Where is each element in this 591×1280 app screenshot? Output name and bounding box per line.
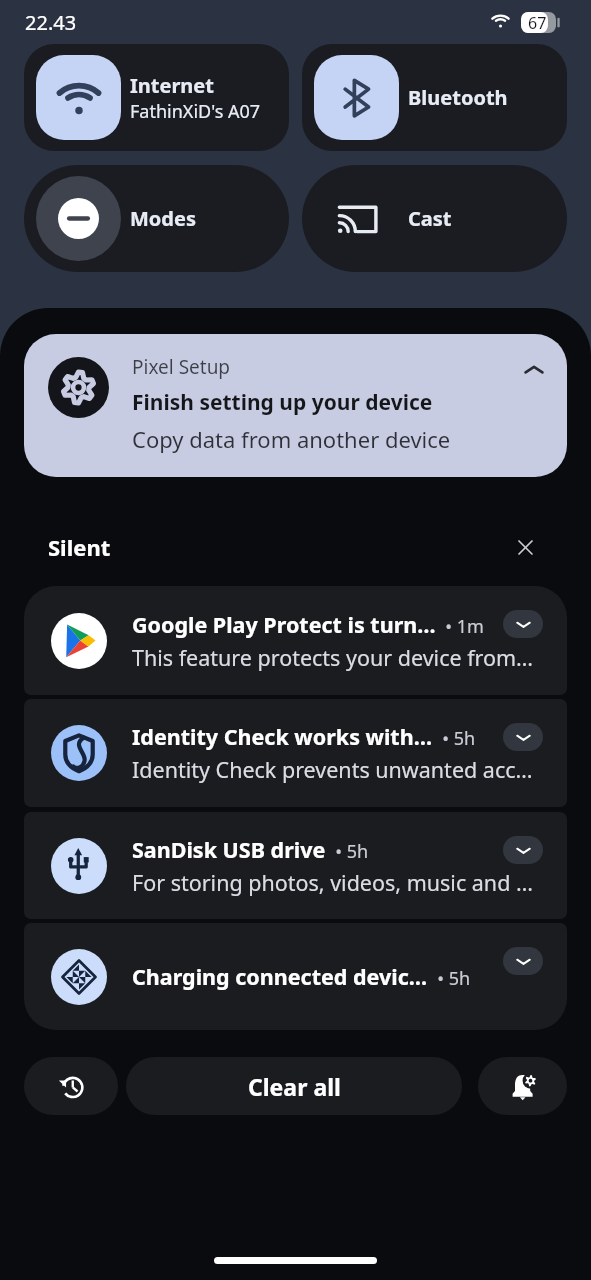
staticText: For storing photos, videos, music and … — [132, 868, 533, 897]
staticText: Pixel Setup — [132, 354, 231, 380]
staticText: Google Play Protect is turn… — [132, 610, 436, 639]
button[interactable]: Cast — [302, 165, 567, 272]
staticText: Copy data from another device — [132, 424, 451, 454]
staticText: • 5h — [326, 839, 369, 864]
staticText: Silent — [48, 532, 111, 562]
staticText: 67 — [528, 12, 547, 33]
button[interactable]: Charging connected devic… — [24, 923, 567, 1030]
staticText: 22.43 — [25, 9, 77, 36]
button[interactable]: Clear silent notifications — [507, 529, 543, 565]
button[interactable]: Notification settings — [478, 1057, 567, 1115]
staticText: Clear all — [248, 1071, 341, 1102]
button[interactable]: SanDisk USB drive — [24, 812, 567, 919]
button[interactable]: Expand — [503, 610, 543, 638]
staticText: FathinXiD's A07 — [130, 99, 261, 124]
button[interactable]: Google Play Protect is turn… — [24, 586, 567, 695]
staticText: Modes — [130, 205, 196, 232]
staticText: Finish setting up your device — [132, 388, 433, 417]
button[interactable]: Clear all — [126, 1057, 462, 1115]
staticText: • 5h — [428, 966, 471, 991]
button[interactable]: Collapse — [513, 349, 555, 391]
staticText: Identity Check prevents unwanted acc… — [132, 755, 533, 784]
staticText: Identity Check works with… — [132, 722, 433, 751]
staticText: Charging connected devic… — [132, 962, 428, 991]
button[interactable]: Notification history — [24, 1057, 118, 1115]
staticText: Cast — [408, 205, 452, 232]
staticText: • 1m — [436, 614, 484, 639]
staticText: Bluetooth — [408, 84, 508, 111]
staticText: SanDisk USB drive — [132, 835, 326, 864]
staticText: This feature protects your device from… — [132, 643, 534, 672]
button[interactable]: Modes — [24, 165, 289, 272]
button[interactable]: Expand — [503, 723, 543, 751]
staticText: • 5h — [433, 726, 476, 751]
button[interactable]: Expand — [503, 947, 543, 975]
staticText: Internet — [130, 72, 214, 99]
button[interactable]: Bluetooth — [302, 44, 567, 151]
button[interactable]: Identity Check works with… — [24, 699, 567, 807]
button[interactable]: Internet — [24, 44, 289, 151]
button[interactable]: Expand — [503, 836, 543, 864]
button[interactable]: Pixel Setup — [24, 334, 567, 477]
